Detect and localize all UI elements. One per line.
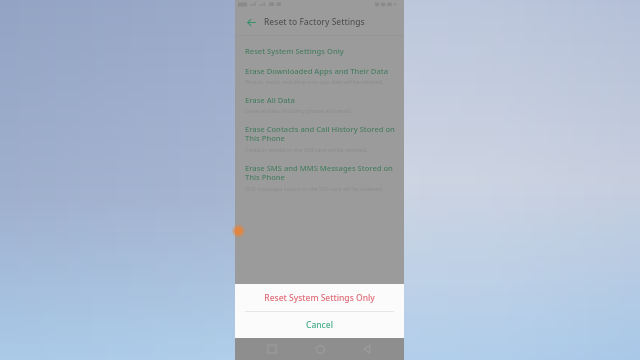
staticText: Erase Contacts and Call History Stored o… bbox=[245, 124, 395, 144]
staticText: SMS messages stored on the SIM card will… bbox=[245, 185, 383, 192]
staticText: Erase All Data bbox=[245, 95, 295, 105]
staticText: Erase Downloaded Apps and Their Data bbox=[245, 66, 388, 76]
button[interactable]: Erase Contacts and Call History Stored o… bbox=[235, 119, 404, 158]
staticText: Reset to Factory Settings bbox=[264, 16, 365, 28]
button[interactable]: Cancel bbox=[235, 312, 404, 338]
button[interactable]: Erase All Data bbox=[235, 90, 404, 119]
staticText: Erase all data, including photos and mus… bbox=[245, 107, 353, 114]
staticText: Cancel bbox=[306, 319, 333, 331]
button[interactable]: Erase SMS and MMS Messages Stored on Thi… bbox=[235, 158, 404, 197]
staticText: Photos, music and other non-app data wil… bbox=[245, 78, 384, 85]
button[interactable]: Reset System Settings Only bbox=[235, 284, 404, 311]
staticText: Contacts stored on the SIM card will be … bbox=[245, 146, 368, 153]
button[interactable]: Reset System Settings Only bbox=[235, 41, 404, 61]
staticText: Erase SMS and MMS Messages Stored on Thi… bbox=[245, 163, 393, 183]
button[interactable]: Back bbox=[241, 12, 261, 32]
staticText: Reset System Settings Only bbox=[264, 292, 375, 304]
staticText: Reset System Settings Only bbox=[245, 46, 344, 56]
button[interactable]: Erase Downloaded Apps and Their Data bbox=[235, 61, 404, 90]
